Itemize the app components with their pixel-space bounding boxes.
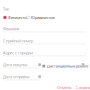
staticText: Тип xyxy=(3,6,9,11)
staticText: Серийный номер xyxy=(3,38,33,43)
staticText: Дата покупки xyxy=(3,62,27,67)
staticText: Юридическое xyxy=(31,15,55,20)
button[interactable]: Сохранить xyxy=(75,85,90,90)
staticText: Фамилия xyxy=(3,26,19,31)
button[interactable]: Серийный номер xyxy=(3,39,86,44)
button[interactable]: Дата покупки xyxy=(3,63,41,68)
staticText: Физическое xyxy=(8,15,29,20)
button[interactable]: Дистанционный ремонт xyxy=(42,63,89,69)
staticText: Дистанционный ремонт xyxy=(47,63,89,69)
button[interactable]: Отмена xyxy=(57,85,71,90)
button[interactable]: Фамилия xyxy=(3,27,86,32)
button[interactable]: Физическое xyxy=(3,15,29,20)
button[interactable]: Переключатель xyxy=(82,63,84,66)
button[interactable]: Юридическое xyxy=(26,15,55,20)
staticText: ⌄ xyxy=(84,51,86,54)
staticText: Адрес с городом xyxy=(3,50,33,55)
staticText: Сохранить xyxy=(75,85,90,90)
staticText: Отмена xyxy=(57,85,71,90)
button[interactable]: Дата отправки xyxy=(3,75,41,80)
button[interactable]: Адрес с городом xyxy=(3,51,86,56)
staticText: Дата отправки xyxy=(3,74,29,79)
